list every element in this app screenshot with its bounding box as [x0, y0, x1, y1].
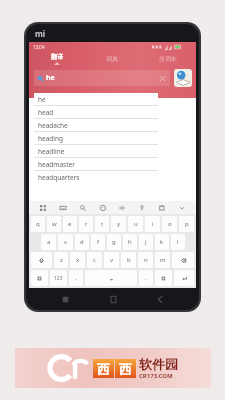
staticText: 翻译	[51, 53, 63, 61]
button[interactable]: Keyboard tool 4	[97, 202, 109, 214]
button[interactable]: Keyboard tool 8	[176, 202, 188, 214]
button[interactable]: 123	[50, 270, 67, 286]
staticText: headquarters	[38, 173, 80, 182]
staticText: n	[144, 256, 148, 264]
staticText: m	[160, 256, 166, 264]
button[interactable]: ,	[69, 270, 83, 286]
button[interactable]: Dictionary	[174, 69, 192, 87]
button[interactable]: d	[75, 234, 89, 250]
staticText: .	[145, 274, 147, 282]
button[interactable]: m	[155, 252, 170, 268]
button[interactable]: headquarters	[34, 171, 158, 183]
button[interactable]: w	[47, 216, 61, 232]
staticText: o	[168, 220, 172, 228]
button[interactable]: e	[63, 216, 77, 232]
staticText: 123	[54, 275, 63, 282]
button[interactable]: Space	[85, 270, 137, 286]
button[interactable]: Keyboard tool 3	[77, 202, 89, 214]
staticText: j	[145, 238, 147, 246]
button[interactable]: v	[104, 252, 119, 268]
staticText: b	[127, 256, 131, 264]
staticText: 13:04	[33, 44, 45, 50]
button[interactable]: i	[145, 216, 160, 232]
button[interactable]: heading	[34, 132, 158, 144]
button[interactable]: Home	[105, 291, 121, 307]
button[interactable]: b	[121, 252, 136, 268]
staticText: y	[117, 220, 121, 228]
button[interactable]: Keyboard tool 2	[57, 202, 69, 214]
button[interactable]: Emoji	[155, 270, 172, 286]
staticText: x	[76, 256, 80, 264]
button[interactable]: u	[128, 216, 143, 232]
staticText: 生词本	[159, 55, 177, 63]
button[interactable]: 翻译	[29, 51, 84, 67]
staticText: ,	[75, 274, 77, 282]
button[interactable]: he	[34, 93, 158, 105]
staticText: mi	[35, 28, 46, 39]
staticText: h	[128, 238, 132, 246]
staticText: he	[38, 95, 46, 104]
button[interactable]: k	[155, 234, 169, 250]
staticText: q	[36, 220, 40, 228]
button[interactable]: head	[34, 106, 158, 118]
staticText: p	[185, 220, 189, 228]
button[interactable]: Back	[152, 291, 168, 307]
button[interactable]: q	[31, 216, 45, 232]
staticText: a	[47, 238, 51, 246]
staticText: u	[134, 220, 138, 228]
button[interactable]: r	[79, 216, 93, 232]
button[interactable]: he	[34, 70, 170, 86]
staticText: f	[97, 238, 100, 246]
button[interactable]: p	[179, 216, 194, 232]
staticText: headmaster	[38, 160, 75, 169]
button[interactable]: 词典	[84, 51, 140, 67]
staticText: CR173.COM	[139, 372, 173, 380]
button[interactable]: Keyboard tool 5	[116, 202, 128, 214]
staticText: k	[160, 238, 164, 246]
staticText: 软件园	[139, 356, 178, 372]
button[interactable]: h	[123, 234, 137, 250]
button[interactable]: j	[139, 234, 153, 250]
button[interactable]: Keyboard tool 1	[37, 202, 49, 214]
staticText: heading	[38, 134, 64, 143]
button[interactable]: Menu	[57, 291, 73, 307]
staticText: d	[80, 238, 84, 246]
button[interactable]: Backspace	[172, 252, 194, 268]
button[interactable]: o	[162, 216, 177, 232]
button[interactable]: Shift	[31, 252, 52, 268]
staticText: headline	[38, 147, 65, 156]
button[interactable]: Keyboard tool 6	[136, 202, 148, 214]
button[interactable]: headache	[34, 119, 158, 131]
staticText: c	[93, 256, 96, 264]
staticText: r	[85, 220, 88, 228]
button[interactable]: .	[139, 270, 153, 286]
button[interactable]: Clear	[158, 74, 167, 83]
staticText: he	[46, 73, 55, 83]
button[interactable]: s	[58, 234, 73, 250]
staticText: i	[152, 220, 154, 228]
staticText: v	[110, 256, 114, 264]
button[interactable]: Enter	[174, 270, 194, 286]
staticText: z	[60, 256, 63, 264]
button[interactable]: Symbols	[31, 270, 48, 286]
staticText: 西	[119, 361, 132, 377]
button[interactable]: a	[41, 234, 56, 250]
button[interactable]: headline	[34, 145, 158, 157]
button[interactable]: t	[95, 216, 109, 232]
button[interactable]: x	[70, 252, 85, 268]
button[interactable]: l	[171, 234, 185, 250]
staticText: t	[101, 220, 104, 228]
button[interactable]: 生词本	[140, 51, 196, 67]
staticText: 西	[97, 361, 110, 377]
button[interactable]: y	[111, 216, 126, 232]
button[interactable]: c	[87, 252, 102, 268]
staticText: w	[52, 220, 57, 228]
staticText: head	[38, 108, 54, 117]
button[interactable]: z	[54, 252, 68, 268]
button[interactable]: headmaster	[34, 158, 158, 170]
button[interactable]: g	[107, 234, 121, 250]
staticText: e	[68, 220, 72, 228]
button[interactable]: Keyboard tool 7	[156, 202, 168, 214]
button[interactable]: n	[138, 252, 153, 268]
button[interactable]: f	[91, 234, 105, 250]
